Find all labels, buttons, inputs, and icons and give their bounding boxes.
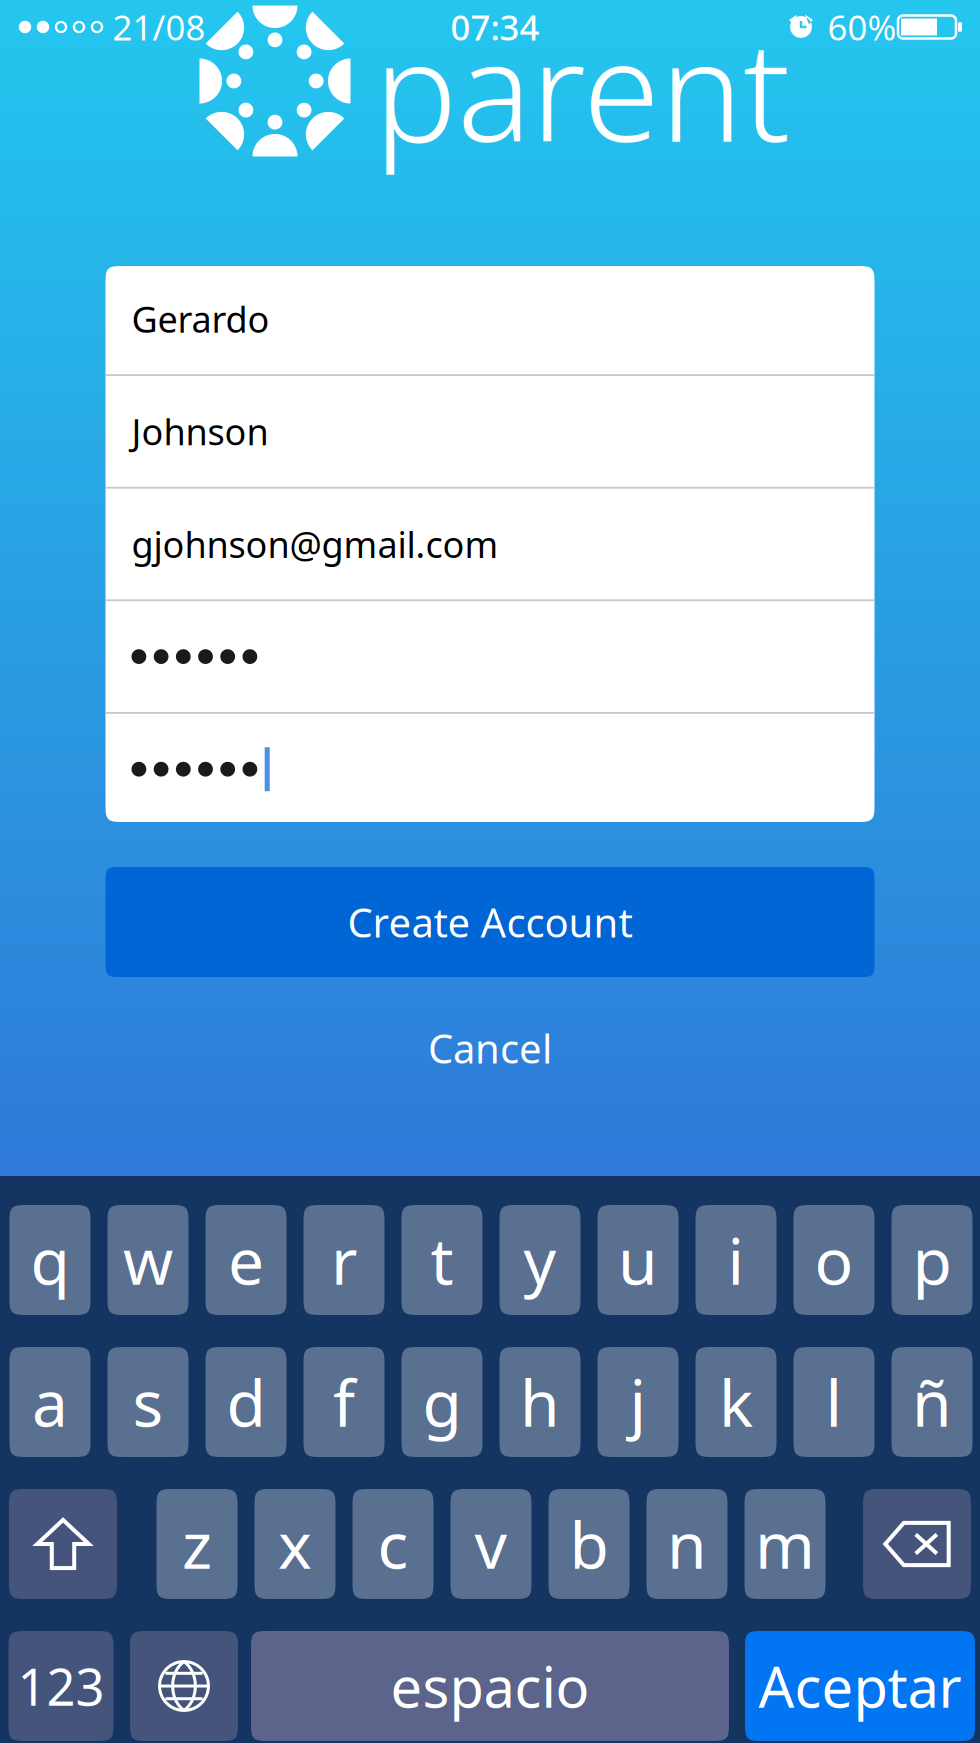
staticText: p (912, 1217, 951, 1302)
staticText: z (182, 1501, 212, 1586)
staticText: 21/08 (112, 4, 205, 50)
button[interactable]: g (401, 1347, 482, 1457)
button[interactable]: s (107, 1347, 188, 1457)
staticText: j (629, 1359, 646, 1444)
staticText: Create Account (347, 895, 632, 948)
button[interactable]: l (793, 1347, 874, 1457)
staticText: t (430, 1217, 453, 1302)
button[interactable]: u (597, 1205, 678, 1315)
button[interactable]: Next keyboard (130, 1631, 238, 1741)
button[interactable]: x (254, 1489, 335, 1599)
staticText: 60% (827, 4, 896, 50)
staticText: d (226, 1359, 265, 1444)
staticText: y (523, 1217, 556, 1302)
staticText: 07:34 (450, 4, 539, 50)
staticText: o (814, 1217, 853, 1302)
button[interactable]: Delete (863, 1489, 971, 1599)
staticText: g (422, 1359, 461, 1444)
staticText: ñ (912, 1359, 952, 1444)
staticText: e (228, 1217, 264, 1302)
button[interactable]: 123 (8, 1631, 113, 1741)
staticText: n (667, 1501, 707, 1586)
staticText: 123 (17, 1652, 104, 1720)
button[interactable]: z (156, 1489, 237, 1599)
button[interactable]: b (548, 1489, 629, 1599)
button[interactable]: p (891, 1205, 972, 1315)
button[interactable]: Cancel (340, 1010, 640, 1086)
button[interactable]: Shift (9, 1489, 117, 1599)
staticText: s (132, 1359, 163, 1444)
staticText: w (123, 1217, 173, 1302)
staticText: r (331, 1217, 357, 1302)
staticText: gjohnson@gmail.com (131, 520, 498, 568)
staticText: i (727, 1217, 744, 1302)
staticText: a (32, 1359, 68, 1444)
button[interactable]: w (107, 1205, 188, 1315)
button[interactable]: y (499, 1205, 580, 1315)
button[interactable]: i (695, 1205, 776, 1315)
button[interactable]: a (9, 1347, 90, 1457)
staticText: u (618, 1217, 658, 1302)
staticText: c (377, 1501, 408, 1586)
staticText: m (755, 1501, 815, 1586)
staticText: f (333, 1359, 355, 1444)
staticText: Cancel (428, 1021, 552, 1074)
button[interactable]: q (9, 1205, 90, 1315)
staticText: q (30, 1217, 69, 1302)
staticText: Gerardo (131, 295, 269, 343)
staticText: h (520, 1359, 560, 1444)
staticText: Aceptar (758, 1649, 961, 1723)
button[interactable]: espacio (251, 1631, 729, 1741)
staticText: Johnson (131, 407, 268, 455)
staticText: parent (374, 0, 790, 180)
button[interactable]: Aceptar (745, 1631, 975, 1741)
button[interactable]: k (695, 1347, 776, 1457)
staticText: v (474, 1501, 507, 1586)
button[interactable]: e (205, 1205, 286, 1315)
staticText: espacio (390, 1649, 589, 1723)
button[interactable]: f (303, 1347, 384, 1457)
button[interactable]: n (646, 1489, 727, 1599)
button[interactable]: d (205, 1347, 286, 1457)
staticText: l (825, 1359, 842, 1444)
button[interactable]: m (744, 1489, 825, 1599)
button[interactable]: c (352, 1489, 433, 1599)
button[interactable]: t (401, 1205, 482, 1315)
button[interactable]: h (499, 1347, 580, 1457)
button[interactable]: o (793, 1205, 874, 1315)
button[interactable]: r (303, 1205, 384, 1315)
staticText: k (719, 1359, 753, 1444)
button[interactable]: j (597, 1347, 678, 1457)
staticText: x (278, 1501, 312, 1586)
button[interactable]: Create Account (105, 867, 874, 977)
button[interactable]: v (450, 1489, 531, 1599)
button[interactable]: ñ (891, 1347, 972, 1457)
staticText: b (569, 1501, 608, 1586)
